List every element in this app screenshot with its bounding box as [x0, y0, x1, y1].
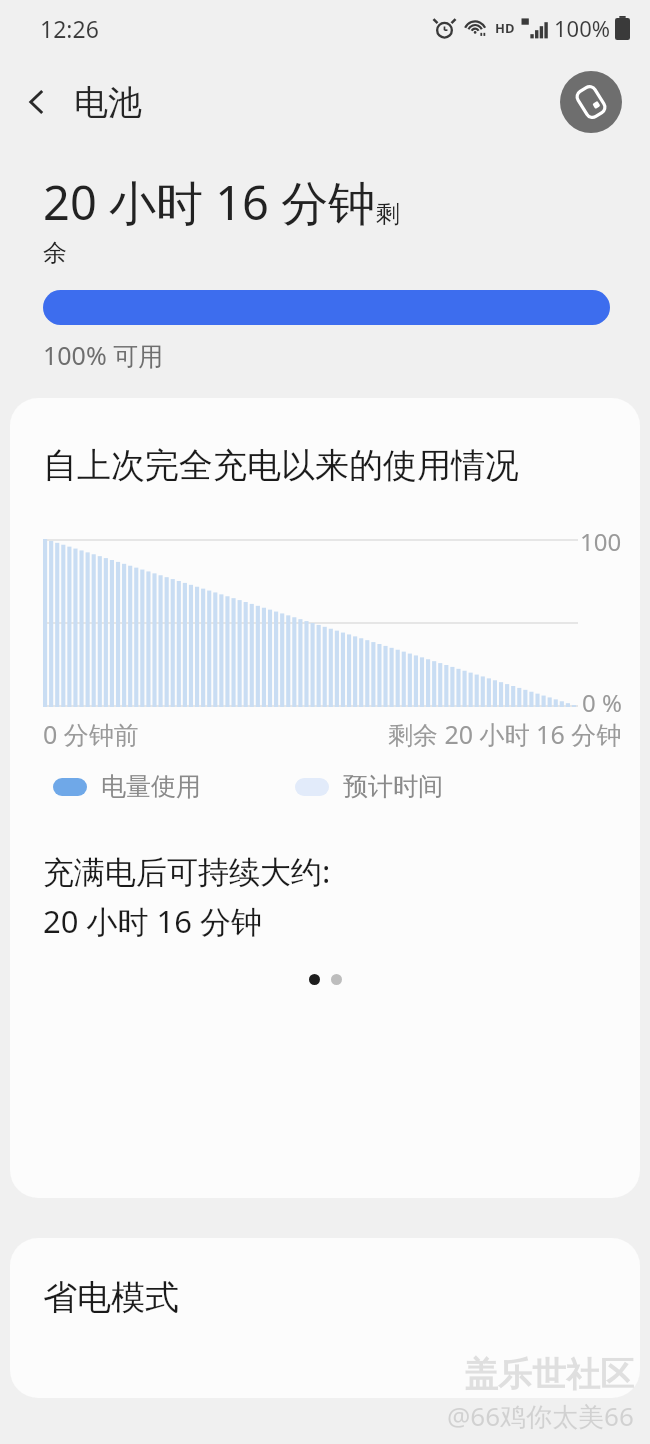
staticText: 20 小时 16 分钟	[43, 900, 263, 942]
staticText: 电池	[74, 81, 142, 124]
staticText: 12:26	[40, 13, 99, 44]
staticText: 余	[43, 238, 67, 268]
staticText: 0 %	[582, 686, 622, 719]
staticText: @66鸡你太美66	[447, 1398, 634, 1434]
staticText: HD	[495, 19, 515, 37]
button[interactable]: Battery usage widget	[560, 71, 622, 133]
staticText: 100	[580, 525, 622, 558]
staticText: 0 分钟前	[43, 717, 139, 751]
staticText: 剩余 20 小时 16 分钟	[388, 717, 622, 751]
staticText: 充满电后可持续大约:	[43, 850, 331, 892]
button[interactable]: 自上次完全充电以来的使用情况	[10, 398, 640, 1198]
staticText: 20 小时 16 分钟	[43, 170, 376, 234]
staticText: 100%	[554, 13, 611, 43]
staticText: 预计时间	[343, 771, 443, 802]
staticText: 盖乐世社区	[464, 1353, 634, 1396]
staticText: 自上次完全充电以来的使用情况	[43, 444, 519, 487]
button[interactable]: Back	[0, 65, 74, 139]
staticText: 100% 可用	[43, 338, 164, 372]
staticText: 剩	[376, 199, 400, 229]
staticText: 电量使用	[101, 771, 201, 802]
staticText: 省电模式	[43, 1276, 179, 1319]
button[interactable]: 省电模式	[10, 1238, 640, 1398]
